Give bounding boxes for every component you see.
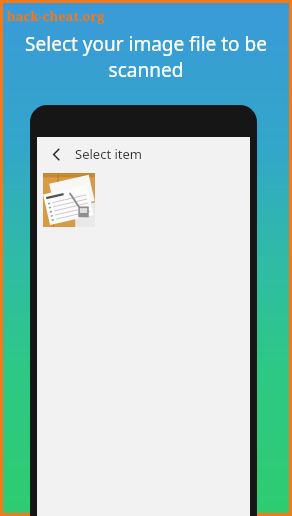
- staticText: Select item: [75, 145, 143, 163]
- staticText: Select your image file to be scanned: [19, 31, 273, 83]
- button[interactable]: Checklist image: [43, 173, 95, 227]
- staticText: hack-cheat.org: [7, 7, 105, 25]
- button[interactable]: Back: [43, 141, 69, 167]
